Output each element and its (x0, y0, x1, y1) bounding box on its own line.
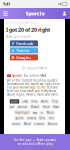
staticText: Or copy permalink (22, 66, 47, 70)
staticText: Highlight (15, 111, 29, 114)
button[interactable]: Crazy (20, 99, 29, 104)
staticText: Get the app — faster quizzes, (13, 138, 56, 142)
button[interactable]: Account (59, 8, 70, 19)
staticText: no ads and offline play (17, 142, 52, 146)
button[interactable]: Easy (32, 111, 38, 115)
button[interactable]: G (10, 54, 38, 60)
staticText: G (11, 55, 14, 60)
staticText: Word (24, 122, 31, 126)
staticText: Trivia (31, 100, 37, 103)
staticText: Share your results (6, 35, 30, 38)
button[interactable]: Geo (38, 116, 46, 120)
staticText: Sporcle (25, 10, 44, 17)
staticText: Music (47, 111, 54, 114)
button[interactable]: History (26, 116, 37, 120)
button[interactable]: Sports (14, 116, 24, 120)
staticText: Facebook (16, 41, 33, 46)
staticText: Sports (15, 116, 23, 120)
button[interactable]: Science (16, 105, 29, 109)
staticText: TV (40, 111, 43, 114)
staticText: Pop (52, 100, 58, 103)
button[interactable]: TV (39, 111, 44, 115)
button[interactable]: Movie (39, 99, 50, 104)
button[interactable]: f (10, 40, 38, 46)
staticText: Food (42, 105, 49, 109)
staticText: Bonus (48, 122, 57, 126)
button[interactable]: Menu (0, 8, 11, 19)
button[interactable]: Bonus (46, 122, 58, 126)
staticText: Picture (34, 122, 44, 126)
staticText: 9:41 (3, 1, 10, 7)
staticText: sporcle.com/games/quiz (6, 21, 38, 24)
staticText: t (12, 48, 14, 53)
button[interactable]: Music (46, 111, 55, 115)
staticText: The online MBA (23, 74, 46, 77)
button[interactable]: Food (41, 105, 51, 109)
button[interactable]: Word (23, 122, 32, 126)
button[interactable]: Logo (10, 99, 19, 104)
button[interactable]: Fun (47, 116, 55, 120)
staticText: Logo (11, 100, 18, 103)
button[interactable]: Pop (51, 99, 59, 104)
button[interactable]: Brand (30, 105, 40, 109)
staticText: Science (17, 105, 27, 109)
staticText: I got 20 of 20 right (6, 26, 50, 33)
staticText: History (27, 116, 36, 120)
staticText: f (12, 41, 14, 46)
button[interactable]: Highlight (14, 111, 30, 115)
staticText: Twitter (16, 48, 30, 53)
button[interactable]: Hard (52, 105, 60, 109)
button[interactable]: t (10, 47, 38, 53)
staticText: Google+ (16, 55, 31, 60)
staticText: Brand (31, 105, 39, 109)
staticText: Movie (40, 100, 48, 103)
staticText: Geo (39, 116, 45, 120)
staticText: Easy (33, 111, 37, 114)
staticText: LTE (58, 2, 61, 6)
staticText: All of the hottest trending quizzes from… (7, 79, 61, 96)
staticText: Letter (12, 122, 20, 126)
button[interactable]: Trivia (30, 99, 38, 104)
staticText: Crazy (21, 100, 27, 103)
staticText: Sporcle (12, 74, 22, 77)
staticText: Fun (49, 116, 54, 120)
button[interactable]: Get the app — faster quizzes, (0, 134, 70, 150)
button[interactable]: Art (9, 105, 15, 109)
button[interactable]: Letter (11, 122, 21, 126)
staticText: Hard (53, 105, 59, 109)
staticText: Art (10, 105, 14, 109)
button[interactable]: Picture (33, 122, 45, 126)
